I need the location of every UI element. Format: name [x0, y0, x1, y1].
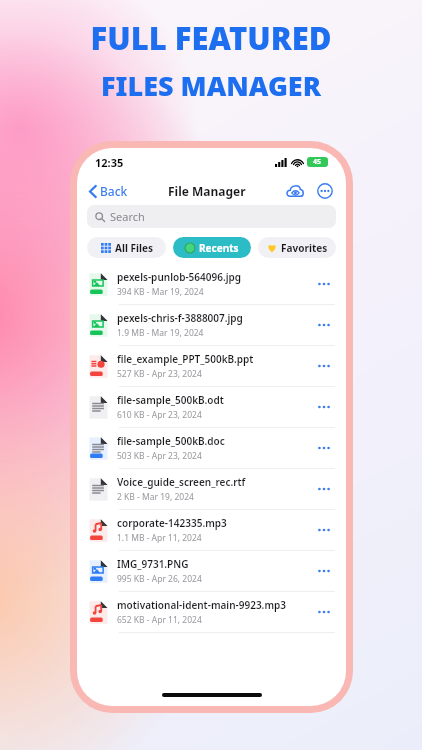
staticText: file_example_PPT_500kB.ppt — [117, 352, 254, 366]
button[interactable]: More — [313, 519, 335, 541]
button[interactable]: Recents — [173, 237, 251, 258]
staticText: file-sample_500kB.odt — [117, 393, 224, 407]
button[interactable]: motivational-ident-main-9923.mp3 — [88, 592, 335, 632]
staticText: 610 KB - Apr 23, 2024 — [117, 409, 202, 421]
staticText: Search — [110, 209, 145, 224]
button[interactable]: file-sample_500kB.odt — [88, 387, 335, 427]
button[interactable]: More — [313, 437, 335, 459]
button[interactable]: More — [313, 601, 335, 623]
button[interactable]: Back — [87, 179, 130, 203]
button[interactable]: More options — [314, 180, 336, 202]
button[interactable]: Voice_guide_screen_rec.rtf — [88, 469, 335, 509]
staticText: FILES MANAGER — [0, 67, 422, 104]
staticText: 503 KB - Apr 23, 2024 — [117, 450, 202, 462]
staticText: IMG_9731.PNG — [117, 557, 189, 571]
staticText: FULL FEATURED — [0, 17, 422, 59]
button[interactable]: All Files — [87, 237, 166, 258]
button[interactable]: More — [313, 314, 335, 336]
button[interactable]: Favorites — [258, 237, 336, 258]
staticText: pexels-punlob-564096.jpg — [117, 270, 242, 284]
button[interactable]: file-sample_500kB.doc — [88, 428, 335, 468]
staticText: Favorites — [281, 241, 328, 255]
staticText: 394 KB - Mar 19, 2024 — [117, 286, 204, 298]
staticText: File Manager — [168, 183, 246, 199]
button[interactable]: file_example_PPT_500kB.ppt — [88, 346, 335, 386]
button[interactable]: pexels-chris-f-3888007.jpg — [88, 305, 335, 345]
staticText: pexels-chris-f-3888007.jpg — [117, 311, 243, 325]
button[interactable]: corporate-142335.mp3 — [88, 510, 335, 550]
button[interactable]: Cloud preview — [284, 180, 306, 202]
button[interactable]: IMG_9731.PNG — [88, 551, 335, 591]
staticText: Recents — [199, 241, 239, 255]
button[interactable]: More — [313, 560, 335, 582]
staticText: 1.9 MB - Mar 19, 2024 — [117, 327, 204, 339]
staticText: All Files — [115, 241, 153, 255]
staticText: 1.1 MB - Apr 11, 2024 — [117, 532, 202, 544]
staticText: 12:35 — [95, 155, 124, 170]
staticText: 2 KB - Mar 19, 2024 — [117, 491, 194, 503]
staticText: Voice_guide_screen_rec.rtf — [117, 475, 246, 489]
button[interactable]: More — [313, 396, 335, 418]
button[interactable]: More — [313, 355, 335, 377]
staticText: motivational-ident-main-9923.mp3 — [117, 598, 286, 612]
staticText: 652 KB - Apr 11, 2024 — [117, 614, 202, 626]
button[interactable]: More — [313, 478, 335, 500]
staticText: 527 KB - Apr 23, 2024 — [117, 368, 202, 380]
button[interactable]: More — [313, 273, 335, 295]
staticText: 45 — [313, 157, 322, 167]
staticText: 995 KB - Apr 26, 2024 — [117, 573, 202, 585]
button[interactable]: Search — [87, 205, 336, 228]
staticText: Back — [100, 183, 128, 199]
button[interactable]: pexels-punlob-564096.jpg — [88, 264, 335, 304]
staticText: corporate-142335.mp3 — [117, 516, 227, 530]
staticText: file-sample_500kB.doc — [117, 434, 225, 448]
